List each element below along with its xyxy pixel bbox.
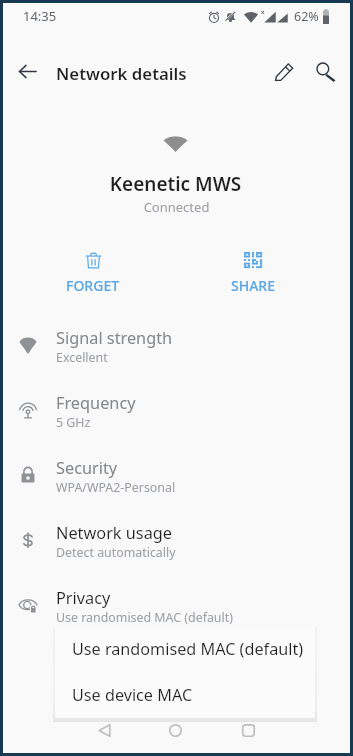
button[interactable]: Back bbox=[88, 715, 120, 746]
button[interactable]: Use randomised MAC (default) bbox=[55, 626, 315, 672]
staticText: Use randomised MAC (default) bbox=[56, 609, 233, 626]
staticText: 14:35 bbox=[23, 7, 57, 25]
staticText: Frequency bbox=[56, 392, 136, 414]
staticText: SHARE bbox=[231, 276, 275, 295]
button[interactable]: Signal strength bbox=[3, 315, 350, 380]
button[interactable]: Home bbox=[159, 715, 191, 746]
staticText: Use device MAC bbox=[72, 684, 193, 706]
button[interactable]: Use device MAC bbox=[55, 672, 315, 718]
staticText: Security bbox=[56, 457, 118, 479]
staticText: Privacy bbox=[56, 587, 111, 609]
staticText: Keenetic MWS bbox=[2, 171, 349, 197]
staticText: 5 GHz bbox=[56, 414, 91, 431]
staticText: Excellent bbox=[56, 349, 108, 366]
staticText: Detect automatically bbox=[56, 544, 176, 561]
staticText: Use randomised MAC (default) bbox=[72, 638, 304, 660]
button[interactable]: SHARE bbox=[209, 245, 297, 299]
staticText: Signal strength bbox=[56, 327, 173, 349]
button[interactable]: Security bbox=[3, 445, 350, 510]
button[interactable]: Network usage bbox=[3, 510, 350, 575]
button[interactable]: Edit network bbox=[264, 51, 304, 91]
staticText: Connected bbox=[3, 198, 350, 216]
button[interactable]: Recent apps bbox=[232, 715, 264, 746]
staticText: 62% bbox=[294, 8, 319, 25]
button[interactable]: Privacy bbox=[3, 575, 350, 640]
button[interactable]: Navigate up bbox=[7, 51, 47, 91]
button[interactable]: Search bbox=[305, 51, 345, 91]
staticText: Network details bbox=[56, 62, 187, 85]
staticText: FORGET bbox=[66, 276, 120, 295]
button[interactable]: FORGET bbox=[49, 245, 137, 299]
staticText: Network usage bbox=[56, 522, 173, 544]
button[interactable]: Frequency bbox=[3, 380, 350, 445]
staticText: WPA/WPA2-Personal bbox=[56, 479, 176, 496]
